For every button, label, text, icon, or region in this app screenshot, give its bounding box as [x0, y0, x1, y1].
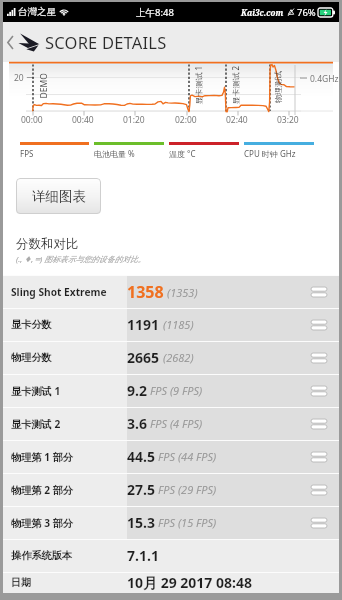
button[interactable]: Compare: [311, 452, 327, 462]
button[interactable]: 操作系统版本: [3, 539, 339, 572]
staticText: 1191: [127, 315, 160, 334]
button[interactable]: Compare: [311, 353, 327, 363]
staticText: 显卡测试 2: [229, 65, 239, 104]
staticText: 00:40: [72, 114, 94, 126]
button[interactable]: Compare: [311, 485, 327, 495]
button[interactable]: Back: [3, 22, 17, 62]
staticText: 物理第 1 部分: [11, 450, 74, 464]
staticText: 操作系统版本: [11, 549, 73, 562]
staticText: 9.2: [127, 381, 147, 400]
button[interactable]: Compare: [311, 518, 327, 528]
staticText: 物理第 2 部分: [11, 483, 74, 497]
staticText: 显卡测试 1: [11, 384, 61, 398]
button[interactable]: Compare: [311, 320, 327, 330]
staticText: (2682): [163, 350, 194, 365]
staticText: 台灣之星: [18, 6, 56, 18]
staticText: 详细图表: [32, 188, 86, 205]
staticText: FPS (15 FPS): [158, 515, 217, 530]
staticText: SCORE DETAILS: [45, 31, 167, 53]
staticText: 温度 °C: [169, 148, 196, 159]
staticText: FPS: [20, 148, 34, 159]
button[interactable]: 详细图表: [16, 178, 101, 214]
staticText: 分数和对比: [16, 236, 79, 252]
staticText: 03:20: [277, 114, 299, 126]
staticText: 物理测试: [273, 71, 283, 103]
staticText: 上午8:48: [136, 6, 174, 19]
staticText: FPS (44 FPS): [158, 449, 217, 464]
staticText: 76%: [297, 6, 316, 19]
staticText: FPS (29 FPS): [158, 482, 217, 497]
button[interactable]: 物理第 2 部分: [3, 473, 339, 506]
button[interactable]: 物理第 3 部分: [3, 506, 339, 539]
staticText: 0.4GHz: [310, 73, 339, 85]
staticText: 15.3: [127, 513, 155, 532]
button[interactable]: Compare: [311, 386, 327, 396]
staticText: 显卡测试 2: [11, 417, 61, 431]
button[interactable]: Compare: [311, 419, 327, 429]
button[interactable]: 显卡测试 1: [3, 374, 339, 407]
staticText: 3.6: [127, 414, 147, 433]
staticText: 电池电量 %: [94, 148, 135, 159]
staticText: 显卡分数: [11, 318, 52, 331]
staticText: 2665: [127, 348, 160, 367]
staticText: 20: [14, 72, 24, 84]
staticText: (1353): [167, 285, 198, 300]
button[interactable]: 显卡分数: [3, 308, 339, 341]
staticText: 02:00: [175, 114, 197, 126]
button[interactable]: Sling Shot Extreme: [3, 275, 339, 308]
staticText: 01:20: [123, 114, 145, 126]
staticText: 物理分数: [11, 351, 52, 364]
staticText: Sling Shot Extreme: [11, 285, 107, 299]
staticText: 7.1.1: [127, 546, 159, 565]
staticText: 日期: [11, 576, 32, 589]
staticText: FPS (4 FPS): [150, 416, 203, 431]
staticText: 物理第 3 部分: [11, 516, 74, 530]
staticText: 显卡测试 1: [192, 65, 202, 104]
button[interactable]: 日期: [3, 572, 339, 593]
staticText: (1185): [163, 317, 194, 332]
staticText: 02:40: [226, 114, 248, 126]
staticText: FPS (9 FPS): [150, 383, 203, 398]
staticText: 10月 29 2017 08:48: [127, 573, 252, 592]
staticText: Kai3c.com: [241, 7, 284, 18]
staticText: DEMO: [37, 73, 47, 98]
staticText: (., ♦, ═) 图标表示与您的设备的对比。: [16, 254, 146, 265]
button[interactable]: Compare: [311, 287, 327, 297]
staticText: 44.5: [127, 447, 155, 466]
button[interactable]: 物理分数: [3, 341, 339, 374]
button[interactable]: 显卡测试 2: [3, 407, 339, 440]
staticText: CPU 时钟 GHz: [244, 148, 296, 159]
staticText: 1358: [127, 281, 164, 303]
button[interactable]: 物理第 1 部分: [3, 440, 339, 473]
staticText: 00:00: [21, 114, 43, 126]
staticText: 27.5: [127, 480, 155, 499]
